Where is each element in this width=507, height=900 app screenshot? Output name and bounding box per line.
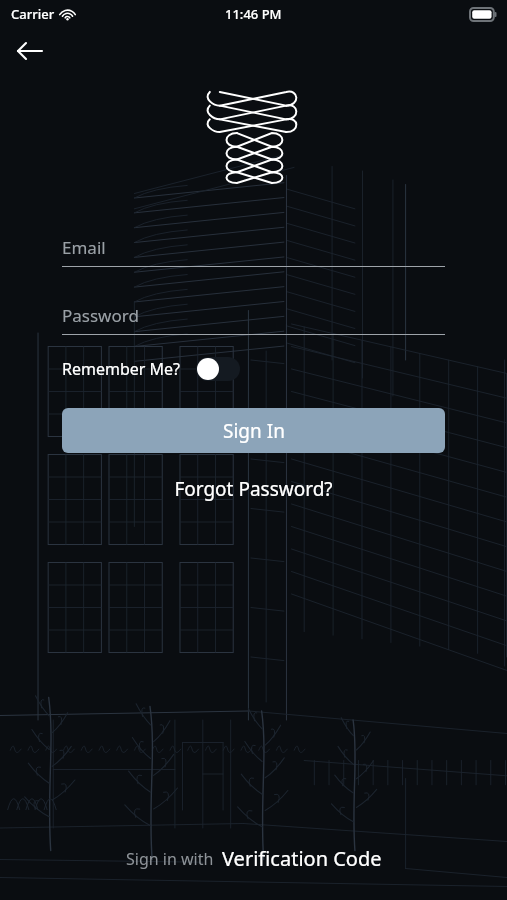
button[interactable]: Forgot Password? [168,470,339,508]
staticText: Password [62,304,139,327]
staticText: Remember Me? [62,358,181,380]
staticText: Carrier [11,5,55,23]
button[interactable]: Remember Me? [62,357,240,381]
button[interactable]: Back [8,30,52,72]
button[interactable]: Email [62,228,445,266]
button[interactable]: Sign In [62,408,445,453]
staticText: Sign In [223,418,285,444]
staticText: Sign in with [126,848,214,870]
staticText: Email [62,236,106,259]
button[interactable]: Password [62,296,445,334]
staticText: Forgot Password? [174,476,333,502]
staticText: 11:46 PM [225,5,282,23]
button[interactable]: Sign in with [126,845,382,872]
staticText: Verification Code [222,845,382,872]
